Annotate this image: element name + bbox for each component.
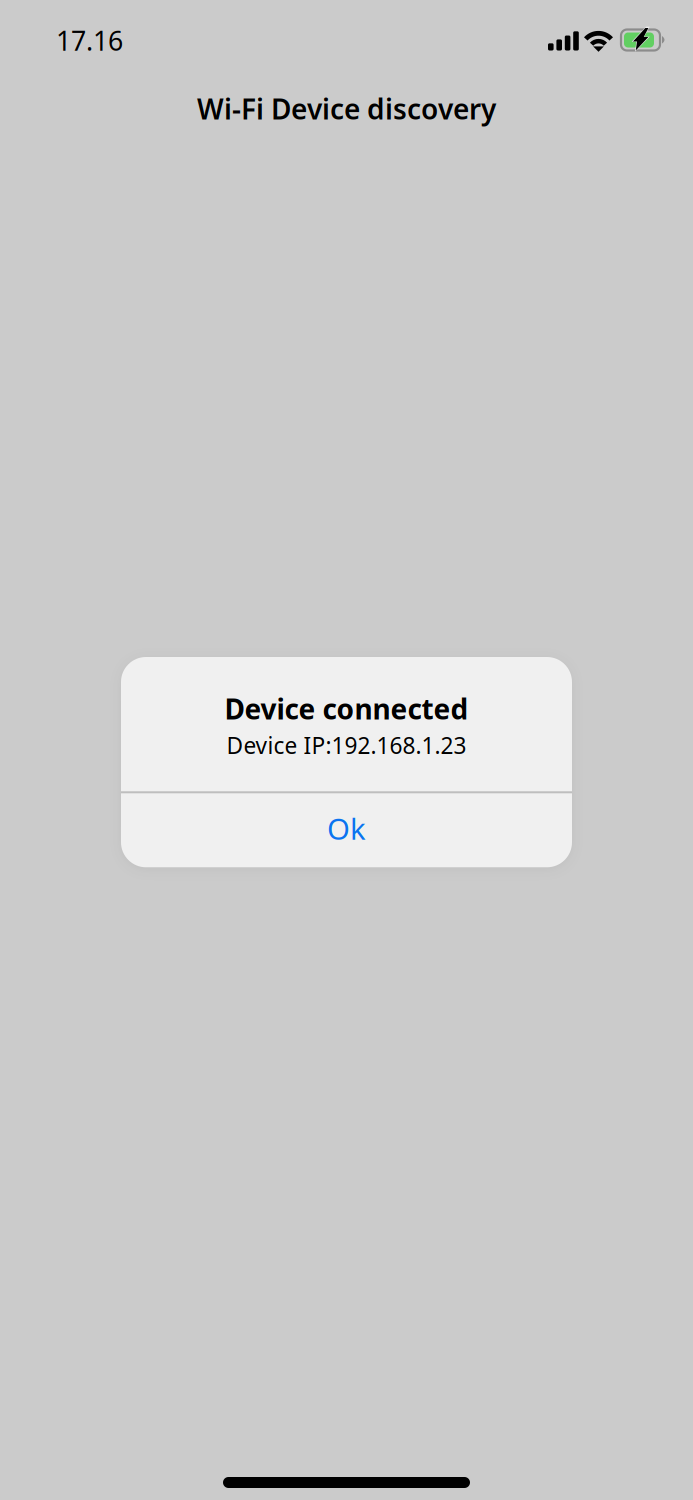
staticText: Ok (327, 809, 366, 848)
staticText: Wi-Fi Device discovery (197, 90, 496, 127)
staticText: 17.16 (56, 23, 123, 58)
staticText: Device IP:192.168.1.23 (226, 730, 466, 760)
button[interactable]: Ok (121, 793, 572, 867)
staticText: Device connected (224, 690, 468, 727)
